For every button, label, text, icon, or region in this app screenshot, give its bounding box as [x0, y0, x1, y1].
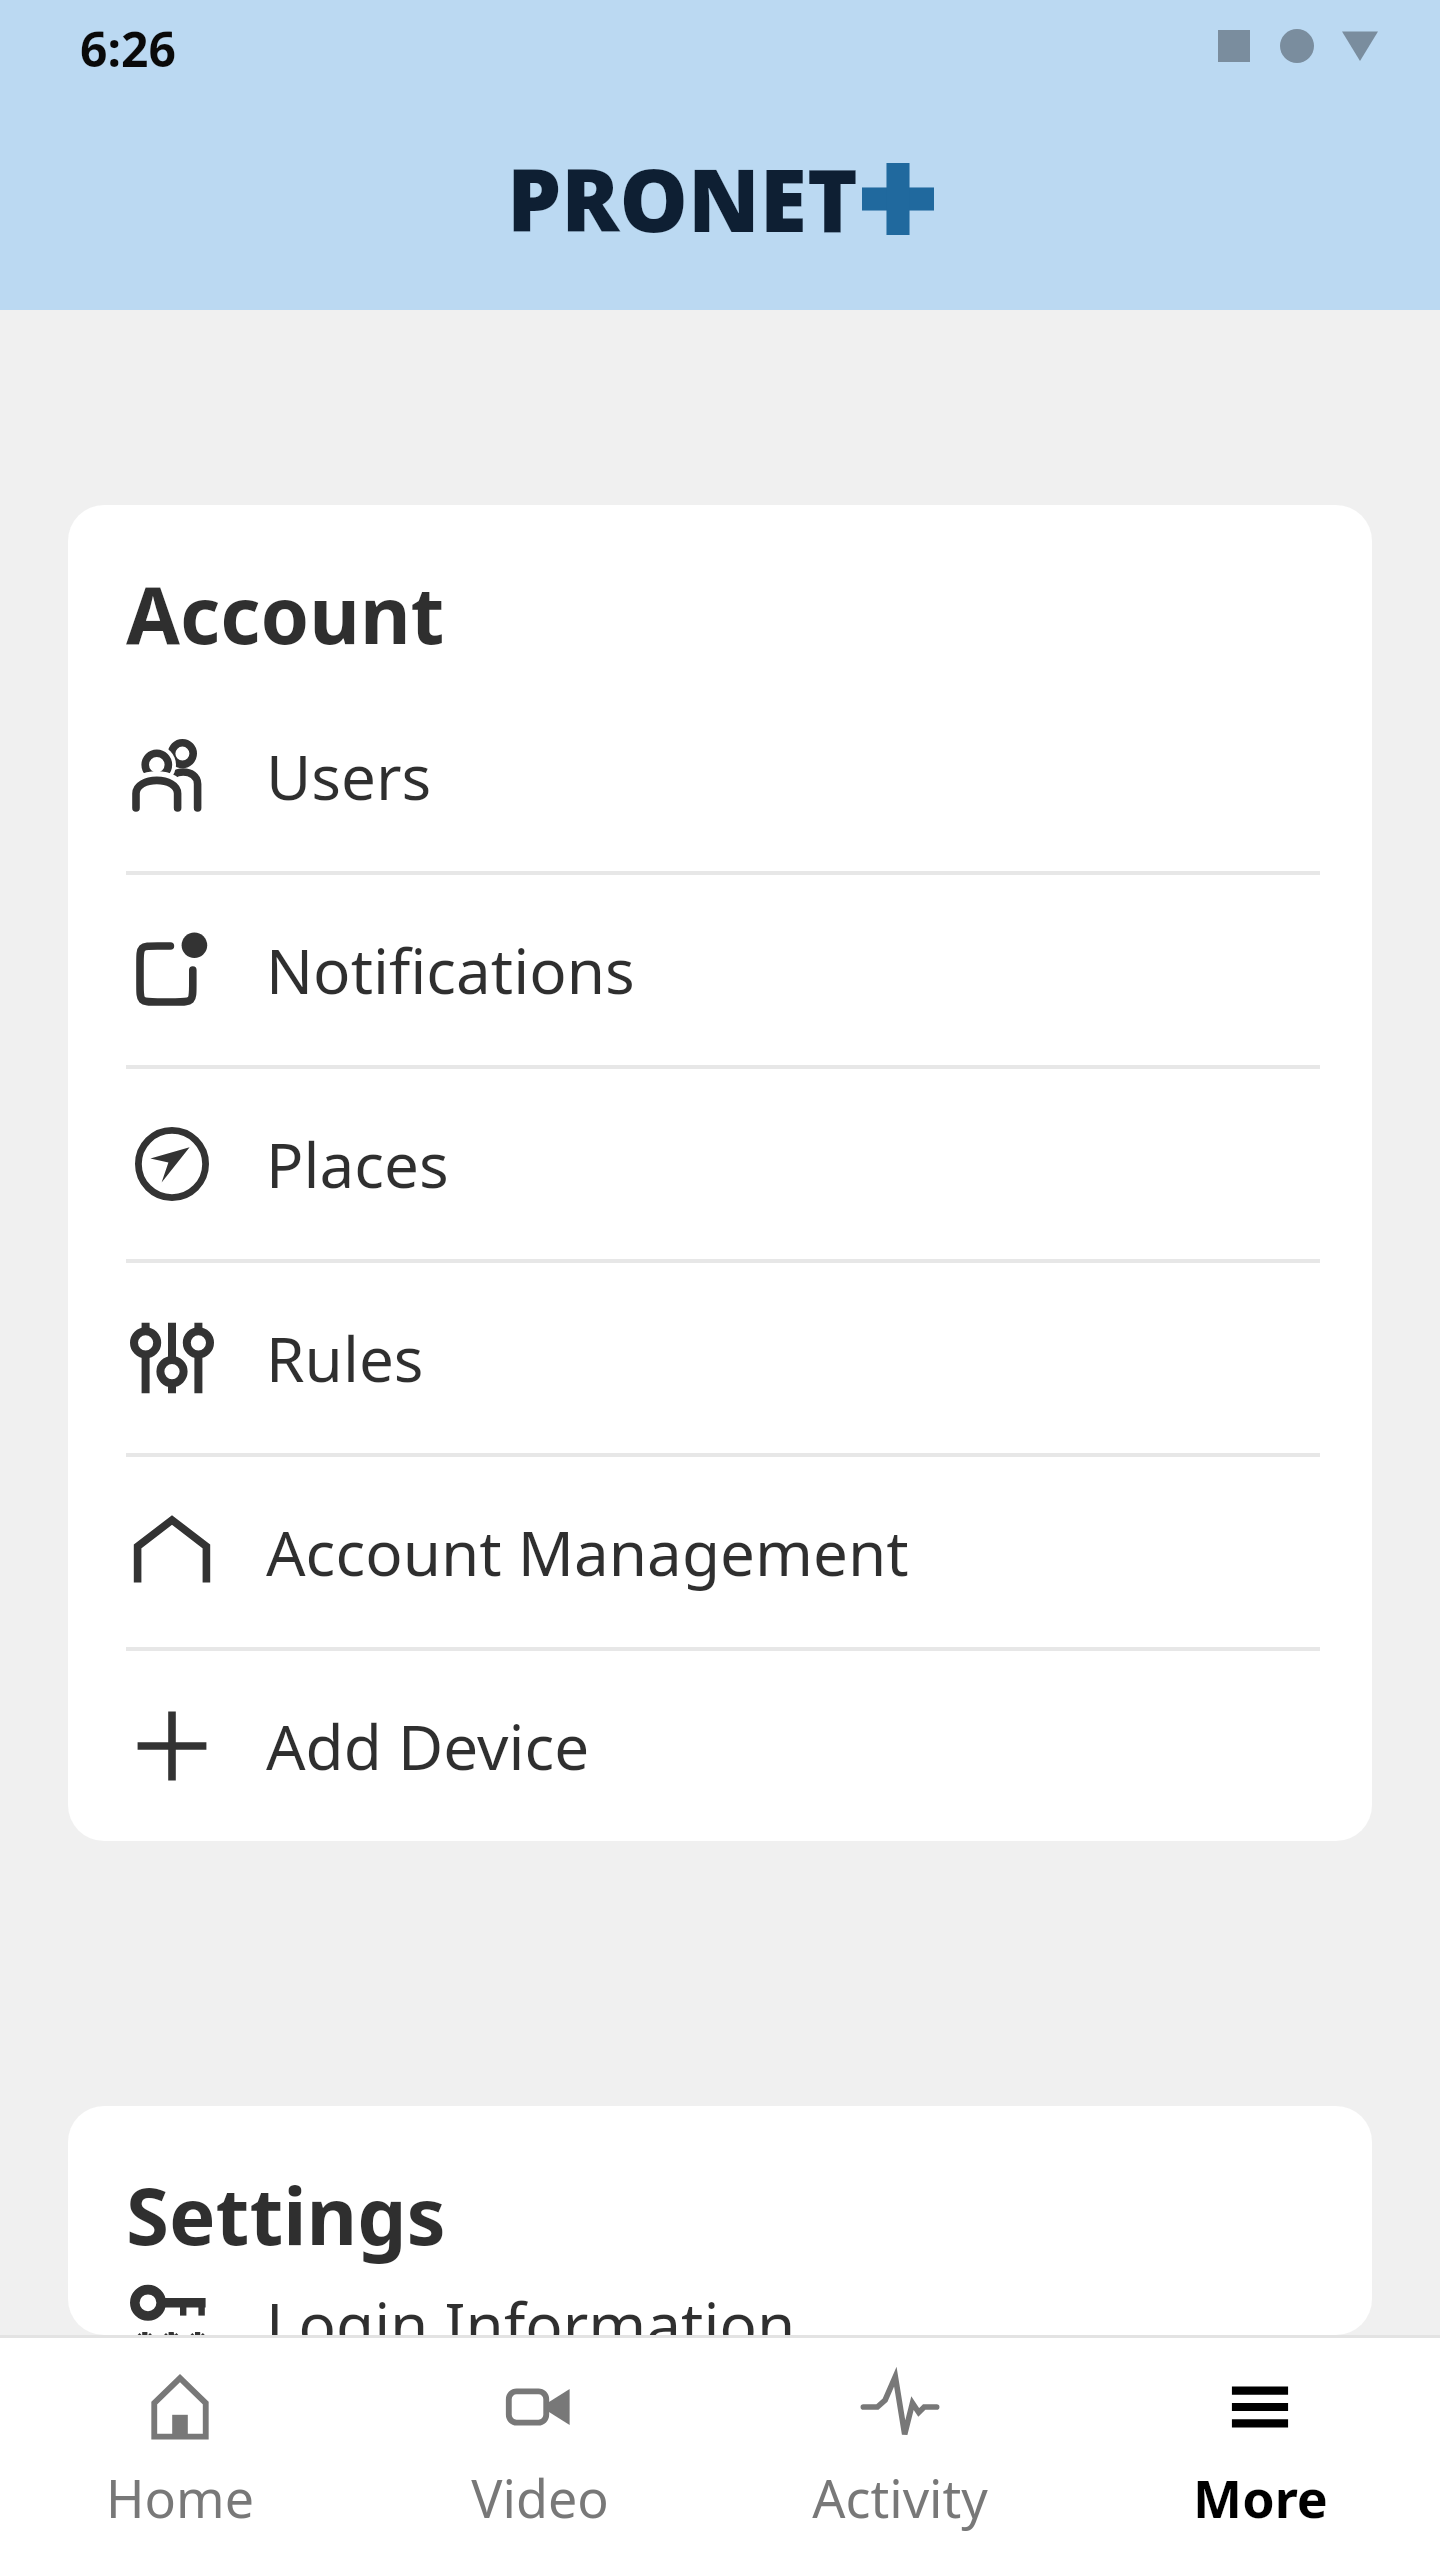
button[interactable]: Notifications: [68, 875, 1372, 1069]
staticText: Activity: [812, 2462, 988, 2533]
staticText: 6:26: [80, 16, 176, 81]
staticText: Users: [266, 734, 432, 818]
button[interactable]: Places: [68, 1069, 1372, 1263]
button[interactable]: Home: [0, 2338, 360, 2533]
staticText: Video: [471, 2462, 609, 2533]
button[interactable]: Rules: [68, 1263, 1372, 1457]
staticText: Places: [266, 1122, 449, 1206]
other: Users: [132, 736, 212, 816]
button[interactable]: Account Management: [68, 1457, 1372, 1651]
staticText: More: [1193, 2462, 1328, 2533]
staticText: Home: [106, 2462, 254, 2533]
button[interactable]: Add Device: [68, 1651, 1372, 1841]
staticText: Notifications: [266, 928, 635, 1012]
other: Login Information: [132, 2282, 212, 2335]
staticText: Account: [126, 561, 445, 667]
button[interactable]: Video: [360, 2338, 720, 2533]
staticText: Add Device: [266, 1704, 590, 1788]
button[interactable]: Users: [68, 681, 1372, 875]
button[interactable]: Login Information: [68, 2282, 1372, 2335]
other: Rules: [132, 1318, 212, 1398]
staticText: Rules: [266, 1316, 424, 1400]
other: Add Device: [132, 1706, 212, 1786]
button[interactable]: More: [1080, 2338, 1440, 2533]
other: Places: [132, 1124, 212, 1204]
other: Account Management: [132, 1512, 212, 1592]
staticText: Account Management: [266, 1510, 909, 1594]
staticText: PRONET: [507, 140, 858, 257]
staticText: Settings: [126, 2162, 446, 2268]
staticText: Login Information: [266, 2282, 796, 2335]
button[interactable]: Activity: [720, 2338, 1080, 2533]
other: Notifications: [132, 930, 212, 1010]
